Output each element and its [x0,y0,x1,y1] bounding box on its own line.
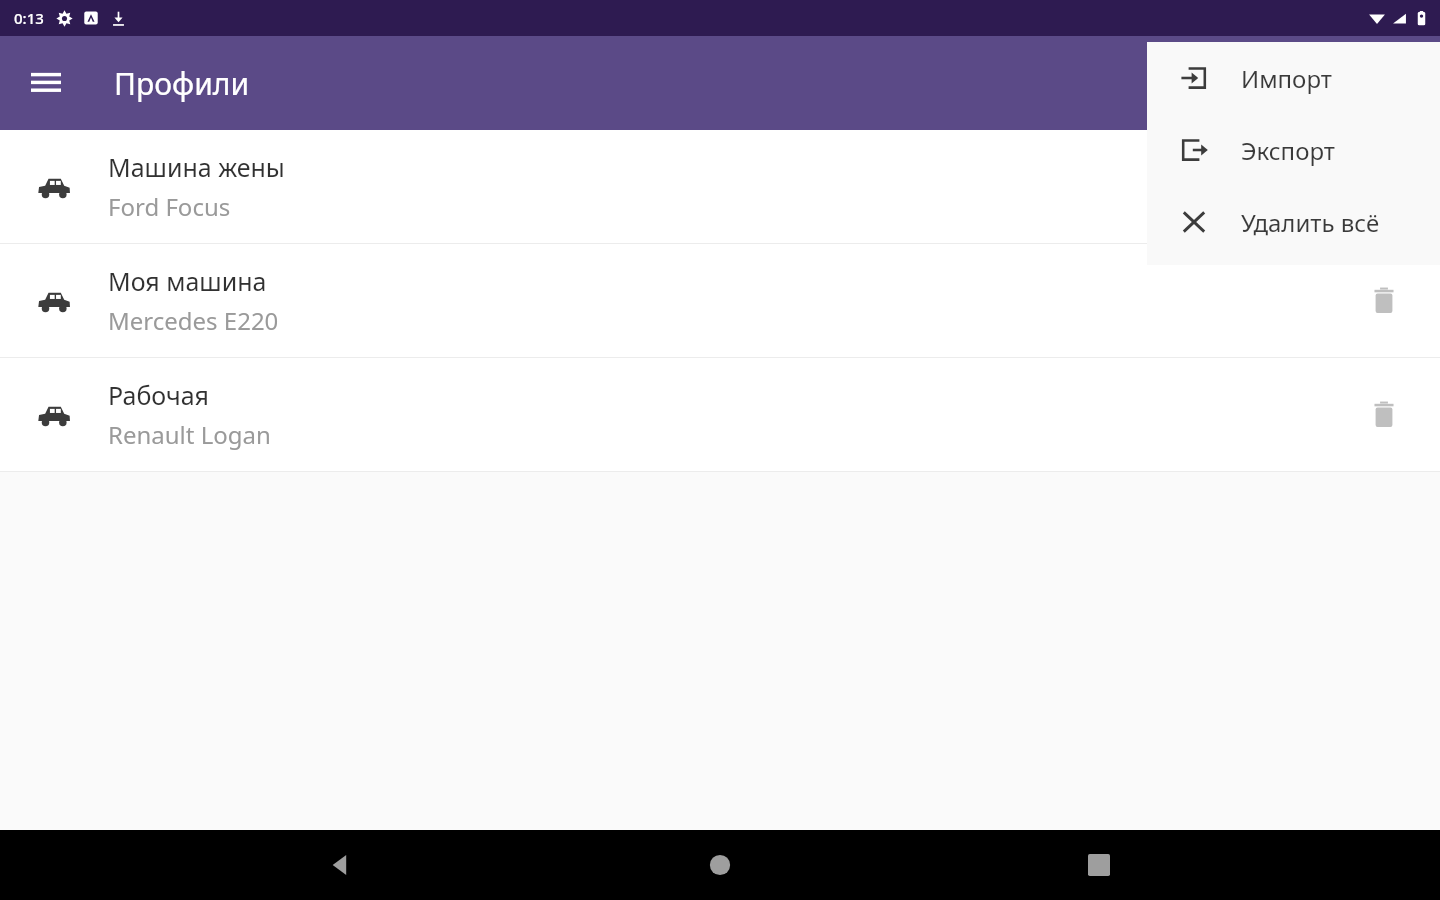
button[interactable]: Машина жены [0,130,1440,243]
staticText: Renault Logan [108,418,271,451]
button[interactable]: Импорт [1147,42,1440,114]
staticText: Моя машина [108,264,267,298]
button[interactable]: Удалить профиль [1328,358,1440,471]
button[interactable]: Открыть меню навигации [18,55,74,111]
button[interactable]: Удалить профиль [1328,244,1440,357]
staticText: 0:13 [14,8,44,28]
button[interactable]: Моя машина [0,244,1440,357]
button[interactable]: Удалить всё [1147,186,1440,258]
button[interactable]: Рабочая [0,358,1440,471]
button[interactable]: Экспорт [1147,114,1440,186]
staticText: Mercedes E220 [108,304,279,337]
button[interactable]: Обзор приложений [1061,830,1137,900]
staticText: Экспорт [1241,134,1335,167]
staticText: Профили [114,63,250,104]
button[interactable]: Домой [682,830,758,900]
staticText: Рабочая [108,378,209,412]
staticText: Импорт [1241,62,1332,95]
button[interactable]: Назад [303,830,379,900]
staticText: Ford Focus [108,190,231,223]
staticText: Машина жены [108,150,285,184]
staticText: Удалить всё [1241,206,1380,239]
